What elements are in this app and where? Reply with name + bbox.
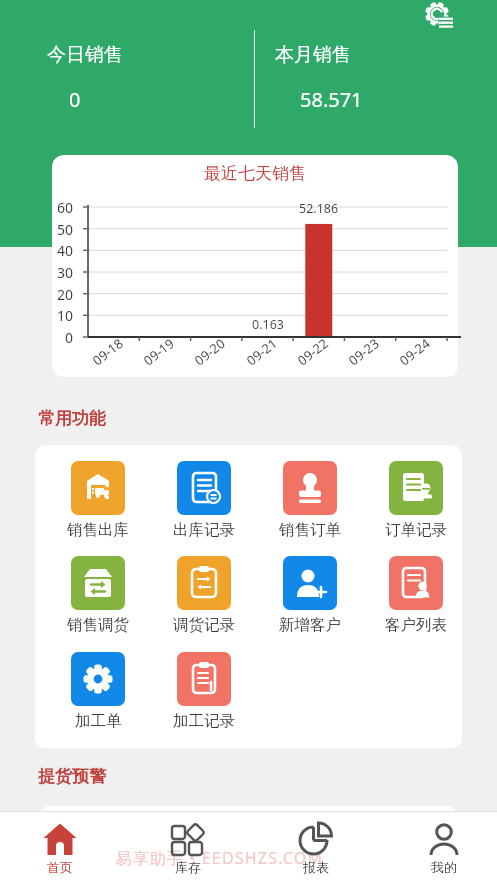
staticText: 58.571 — [300, 86, 363, 113]
button[interactable]: 销售调货 — [45, 556, 151, 635]
staticText: 09-21 — [243, 334, 279, 368]
staticText: 首页 — [47, 859, 73, 875]
staticText: 加工单 — [75, 711, 122, 731]
staticText: 09-24 — [396, 334, 432, 368]
button[interactable]: 库存 — [126, 812, 250, 883]
staticText: 40 — [57, 241, 74, 260]
staticText: 调货记录 — [173, 615, 235, 635]
button[interactable]: 客户列表 — [363, 556, 469, 635]
staticText: 出库记录 — [173, 520, 235, 540]
staticText: 30 — [57, 263, 74, 282]
button[interactable]: 我的 — [382, 812, 497, 883]
button[interactable]: 新增客户 — [257, 556, 363, 635]
staticText: 最近七天销售 — [204, 163, 306, 184]
staticText: 09-23 — [345, 334, 381, 368]
button[interactable]: 订单记录 — [363, 461, 469, 540]
staticText: 我的 — [431, 859, 457, 875]
staticText: 库存 — [175, 859, 201, 875]
staticText: 销售订单 — [279, 520, 341, 540]
staticText: 本月销售 — [275, 43, 351, 67]
staticText: 易享助手 • EEDSHZS.COM — [115, 847, 324, 869]
staticText: 销售调货 — [67, 615, 129, 635]
staticText: 新增客户 — [279, 615, 341, 635]
staticText: 0 — [69, 86, 81, 113]
button[interactable]: 首页 — [0, 812, 122, 883]
staticText: 提货预警 — [38, 766, 106, 787]
button[interactable]: 调货记录 — [151, 556, 257, 635]
button[interactable]: 加工记录 — [151, 652, 257, 731]
staticText: 09-22 — [294, 334, 330, 368]
staticText: 09-19 — [140, 334, 176, 368]
staticText: 常用功能 — [38, 408, 106, 429]
staticText: 0 — [65, 328, 74, 347]
staticText: 今日销售 — [47, 43, 123, 67]
staticText: 报表 — [303, 859, 329, 875]
staticText: 09-18 — [89, 334, 125, 368]
button[interactable]: 出库记录 — [151, 461, 257, 540]
button[interactable]: 销售订单 — [257, 461, 363, 540]
staticText: 销售出库 — [67, 520, 129, 540]
button[interactable]: 销售出库 — [45, 461, 151, 540]
staticText: 09-20 — [191, 334, 227, 368]
staticText: 订单记录 — [385, 520, 447, 540]
staticText: 加工记录 — [173, 711, 235, 731]
button[interactable]: 加工单 — [45, 652, 151, 731]
staticText: 10 — [57, 306, 74, 325]
staticText: 20 — [57, 285, 74, 304]
button[interactable] — [416, 0, 462, 36]
staticText: 52.186 — [299, 200, 339, 217]
staticText: 50 — [57, 220, 74, 239]
staticText: 客户列表 — [385, 615, 447, 635]
staticText: 0.163 — [252, 316, 284, 333]
staticText: 60 — [57, 198, 74, 217]
button[interactable]: 报表 — [254, 812, 378, 883]
